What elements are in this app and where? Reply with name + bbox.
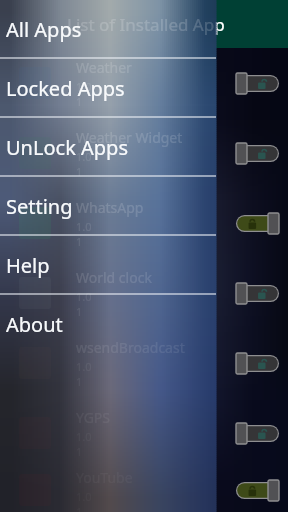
staticText: 1.0 — [76, 149, 92, 164]
staticText: 1.0 — [76, 219, 92, 234]
button[interactable]: YouTube — [0, 468, 288, 512]
staticText: List of Installed App — [67, 13, 225, 36]
button[interactable]: YGPS — [0, 398, 288, 468]
button[interactable]: Setting — [0, 177, 216, 236]
staticText: Weather — [76, 58, 132, 77]
button[interactable]: Locked Apps — [0, 59, 216, 118]
staticText: 1 — [76, 164, 83, 179]
staticText: 1.0 — [76, 359, 92, 374]
staticText: 1.0 — [76, 429, 92, 444]
staticText: 1 — [76, 304, 83, 319]
staticText: All Apps — [6, 16, 82, 43]
staticText: wsendBroadcast — [76, 338, 185, 357]
staticText: WhatsApp — [76, 198, 144, 217]
staticText: 1 — [76, 374, 83, 389]
button[interactable]: About — [0, 295, 216, 354]
staticText: 1 — [76, 94, 83, 109]
staticText: 1.0 — [76, 149, 92, 164]
staticText: 1.0 — [76, 219, 92, 234]
staticText: Weather Widget — [76, 128, 183, 147]
staticText: 1 — [76, 234, 83, 249]
button[interactable]: wsendBroadcast — [0, 328, 288, 398]
button[interactable]: Unlocked — [236, 423, 279, 444]
staticText: Setting — [6, 193, 73, 220]
staticText: UnLock Apps — [6, 134, 128, 161]
staticText: Locked Apps — [6, 75, 125, 102]
staticText: 1.0 — [76, 429, 92, 444]
staticText: 1 — [76, 234, 83, 249]
button[interactable]: Unlocked — [236, 73, 279, 94]
staticText: About — [6, 311, 63, 338]
staticText: 1.0 — [76, 289, 92, 304]
staticText: 1 — [76, 304, 83, 319]
staticText: Weather Widget — [76, 128, 183, 147]
staticText: Help — [6, 252, 50, 279]
staticText: World clock — [76, 268, 152, 287]
button[interactable]: WhatsApp — [0, 188, 288, 258]
staticText: YGPS — [76, 408, 110, 427]
staticText: 1.0 — [76, 489, 92, 504]
staticText: World clock — [76, 268, 152, 287]
staticText: 1 — [76, 164, 83, 179]
staticText: Weather — [76, 58, 132, 77]
staticText: 1.0 — [76, 79, 92, 94]
button[interactable]: Help — [0, 236, 216, 295]
staticText: YouTube — [76, 468, 133, 487]
button[interactable]: Locked — [236, 480, 279, 501]
button[interactable]: Unlocked — [236, 143, 279, 164]
button[interactable]: Unlocked — [236, 353, 279, 374]
button[interactable]: Locked — [236, 213, 279, 234]
button[interactable]: All Apps — [0, 0, 216, 59]
button[interactable]: Weather Widget — [0, 118, 288, 188]
staticText: wsendBroadcast — [76, 338, 185, 357]
staticText: 1.0 — [76, 489, 92, 504]
button[interactable]: Weather — [0, 48, 288, 118]
staticText: YGPS — [76, 408, 110, 427]
staticText: WhatsApp — [76, 198, 144, 217]
staticText: 1.0 — [76, 359, 92, 374]
button[interactable]: Unlocked — [236, 283, 279, 304]
staticText: YouTube — [76, 468, 133, 487]
button[interactable]: World clock — [0, 258, 288, 328]
button[interactable]: UnLock Apps — [0, 118, 216, 177]
staticText: 1 — [76, 94, 83, 109]
staticText: List of Installed App — [67, 13, 216, 36]
staticText: 1.0 — [76, 289, 92, 304]
staticText: 1.0 — [76, 79, 92, 94]
staticText: 1 — [76, 374, 83, 389]
